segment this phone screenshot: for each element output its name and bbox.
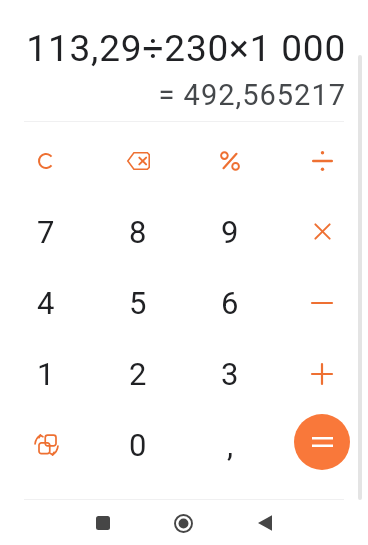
staticText: 5 (129, 285, 147, 321)
button[interactable]: 2 (92, 338, 184, 409)
staticText: 8 (129, 214, 147, 250)
button[interactable]: 3 (184, 338, 276, 409)
button[interactable]: Backspace (92, 125, 184, 196)
button[interactable]: 7 (0, 196, 92, 267)
staticText: 1 (37, 356, 55, 392)
staticText: 3 (221, 356, 239, 392)
button[interactable]: 0 (92, 409, 184, 480)
button[interactable]: 5 (92, 267, 184, 338)
staticText: 4 (37, 285, 55, 321)
button[interactable]: Back (224, 501, 305, 545)
button[interactable]: Convert units (0, 409, 92, 480)
button[interactable]: Percent (184, 125, 276, 196)
button[interactable]: Recents (62, 501, 143, 545)
button[interactable]: 4 (0, 267, 92, 338)
button[interactable]: 8 (92, 196, 184, 267)
button[interactable]: 9 (184, 196, 276, 267)
button[interactable]: Multiply (276, 196, 368, 267)
staticText: 113,29÷230×1 000 (22, 27, 346, 70)
staticText: 9 (221, 214, 239, 250)
button[interactable]: Clear (0, 125, 92, 196)
button[interactable]: 6 (184, 267, 276, 338)
staticText: 2 (129, 356, 147, 392)
staticText: = 492,565217 (22, 78, 346, 112)
staticText: 6 (221, 285, 239, 321)
button[interactable]: Divide (276, 125, 368, 196)
button[interactable]: Equals (294, 414, 350, 470)
staticText: , (227, 427, 234, 463)
staticText: 7 (37, 214, 55, 250)
staticText: 0 (129, 427, 147, 463)
button[interactable]: Home (143, 501, 224, 545)
button[interactable]: Plus (276, 338, 368, 409)
button[interactable]: 1 (0, 338, 92, 409)
button[interactable]: Minus (276, 267, 368, 338)
button[interactable]: , (184, 409, 276, 480)
